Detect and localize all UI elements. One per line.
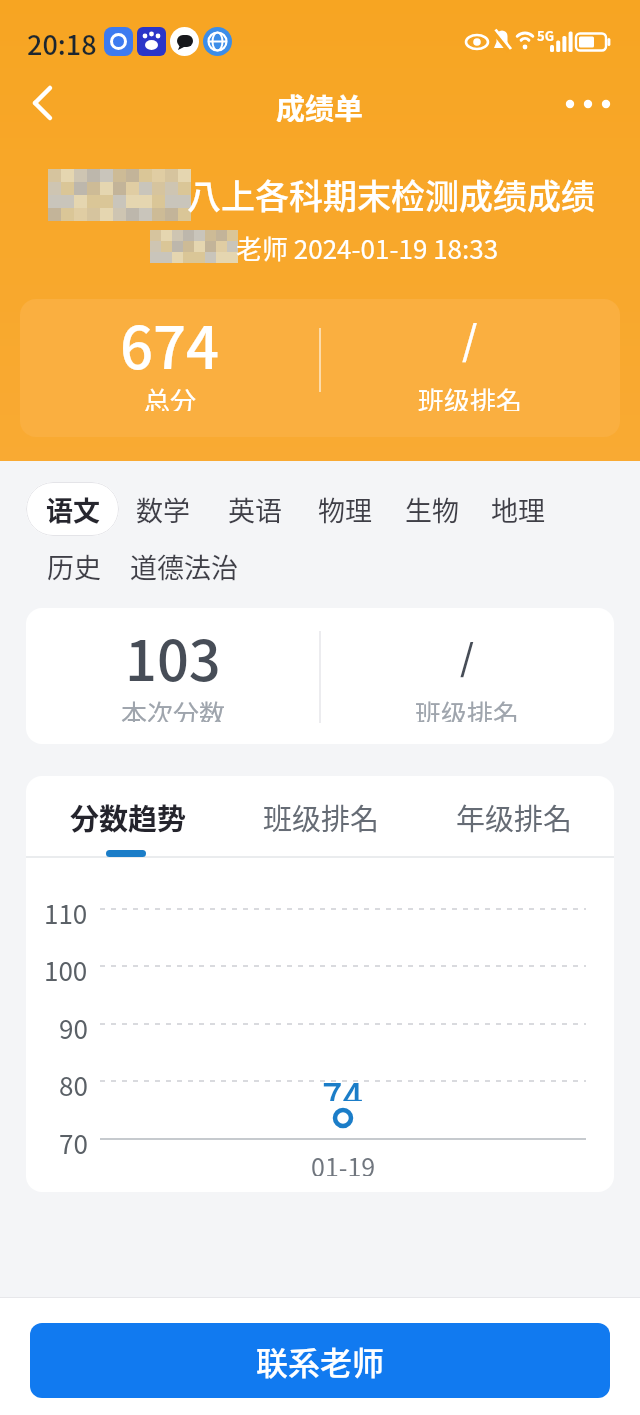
staticText: 01-19 bbox=[311, 1148, 376, 1176]
staticText: 历史 bbox=[47, 547, 101, 586]
staticText: 物理 bbox=[318, 490, 372, 529]
staticText: 分数趋势 bbox=[70, 796, 187, 836]
staticText: 英语 bbox=[228, 490, 282, 529]
staticText: 语文 bbox=[46, 490, 100, 529]
staticText: 成绩单 bbox=[276, 86, 364, 122]
staticText: 生物 bbox=[405, 490, 459, 529]
staticText: 70 bbox=[59, 1124, 88, 1154]
staticText: / bbox=[462, 309, 478, 367]
button[interactable]: 物理 bbox=[300, 482, 390, 536]
staticText: 100 bbox=[44, 951, 88, 981]
staticText: 老师 2024-01-19 18:33 bbox=[236, 229, 499, 267]
button[interactable]: 数学 bbox=[118, 482, 208, 536]
staticText: 20:18 bbox=[27, 24, 97, 63]
button[interactable]: 英语 bbox=[210, 482, 300, 536]
staticText: 年级排名 bbox=[456, 796, 573, 836]
staticText: 90 bbox=[59, 1009, 88, 1039]
staticText: 80 bbox=[59, 1066, 88, 1096]
staticText: 103 bbox=[125, 616, 221, 697]
button[interactable]: 年级排名 bbox=[434, 796, 594, 836]
staticText: 674 bbox=[120, 302, 220, 382]
button[interactable]: 道德法治 bbox=[119, 545, 249, 587]
staticText: 数学 bbox=[136, 490, 190, 529]
button[interactable]: 班级排名 bbox=[241, 796, 401, 836]
button[interactable]: 语文 bbox=[26, 482, 119, 536]
staticText: 联系老师 bbox=[256, 1338, 385, 1384]
staticText: 总分 bbox=[144, 381, 197, 411]
staticText: 地理 bbox=[491, 490, 545, 529]
button[interactable]: 历史 bbox=[29, 545, 119, 587]
button[interactable]: 地理 bbox=[473, 482, 563, 536]
staticText: / bbox=[460, 629, 475, 681]
staticText: 74 bbox=[322, 1068, 364, 1101]
button[interactable]: 生物 bbox=[387, 482, 477, 536]
staticText: 5G bbox=[537, 26, 554, 45]
button[interactable]: 联系老师 bbox=[30, 1323, 610, 1398]
staticText: 110 bbox=[44, 894, 88, 924]
staticText: 道德法治 bbox=[130, 547, 238, 586]
staticText: 八上各科期末检测成绩成绩 bbox=[187, 170, 595, 219]
button[interactable]: 分数趋势 bbox=[48, 796, 208, 836]
button[interactable] bbox=[560, 92, 616, 116]
staticText: 班级排名 bbox=[418, 381, 523, 411]
staticText: 本次分数 bbox=[121, 694, 226, 722]
button[interactable] bbox=[30, 85, 56, 121]
staticText: 班级排名 bbox=[415, 694, 520, 722]
staticText: 班级排名 bbox=[263, 796, 380, 836]
